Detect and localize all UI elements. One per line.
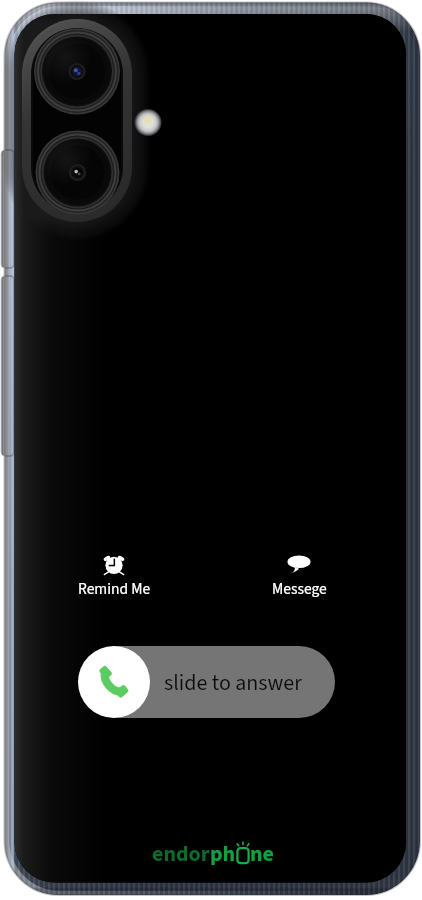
- staticText: endor: [152, 838, 210, 869]
- staticText: ne: [250, 838, 274, 869]
- button[interactable]: Answer call: [78, 646, 150, 718]
- staticText: Remind Me: [78, 578, 151, 600]
- staticText: slide to answer: [164, 667, 302, 698]
- staticText: ph: [210, 838, 236, 869]
- button[interactable]: slide to answer: [84, 646, 335, 718]
- staticText: Messege: [272, 578, 327, 600]
- button[interactable]: Messege: [247, 553, 351, 600]
- button[interactable]: Remind Me: [62, 553, 166, 600]
